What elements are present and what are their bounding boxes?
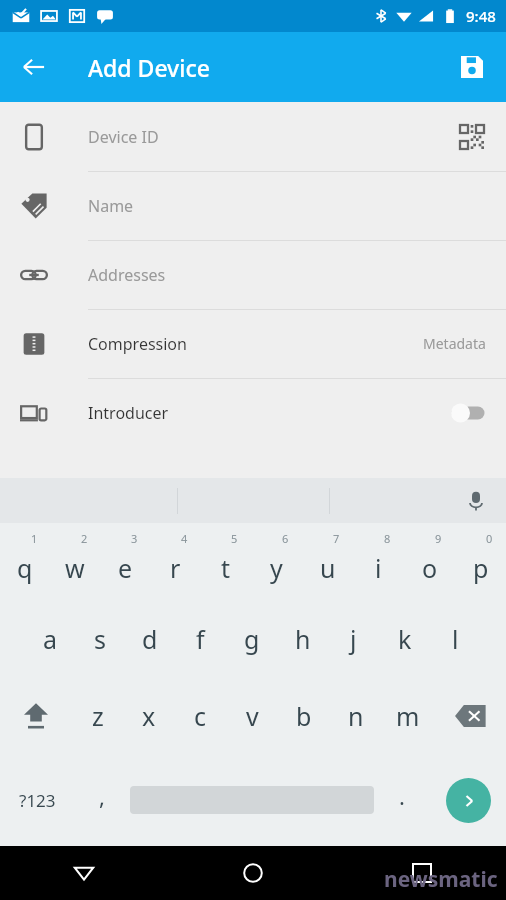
button[interactable]: 5 bbox=[200, 523, 251, 600]
button[interactable]: f bbox=[175, 600, 226, 677]
button[interactable]: Space bbox=[130, 754, 374, 846]
button[interactable]: Name bbox=[0, 171, 506, 240]
staticText: , bbox=[99, 781, 105, 811]
staticText: 5 bbox=[231, 531, 238, 546]
staticText: 1 bbox=[31, 531, 38, 546]
button[interactable]: Scan QR code bbox=[450, 115, 494, 159]
button[interactable]: Save bbox=[448, 43, 496, 91]
staticText: t bbox=[221, 551, 231, 585]
staticText: f bbox=[196, 622, 205, 656]
button[interactable]: d bbox=[125, 600, 175, 677]
button[interactable]: Hide keyboard bbox=[0, 846, 168, 900]
staticText: Metadata bbox=[423, 334, 486, 353]
staticText: s bbox=[94, 622, 106, 656]
button[interactable]: 1 bbox=[0, 523, 50, 600]
button[interactable]: a bbox=[25, 600, 75, 677]
staticText: Addresses bbox=[88, 264, 166, 286]
button[interactable] bbox=[442, 398, 494, 428]
button[interactable]: l bbox=[430, 600, 481, 677]
staticText: 9:48 bbox=[466, 6, 496, 26]
button[interactable]: Compression bbox=[0, 309, 506, 378]
button[interactable]: j bbox=[328, 600, 379, 677]
staticText: d bbox=[142, 622, 158, 656]
button[interactable]: v bbox=[226, 677, 278, 754]
staticText: y bbox=[270, 551, 283, 585]
staticText: 9 bbox=[435, 531, 442, 546]
button[interactable]: Voice input bbox=[456, 481, 496, 521]
staticText: 8 bbox=[384, 531, 391, 546]
staticText: ?123 bbox=[19, 789, 56, 812]
staticText: Introducer bbox=[88, 402, 169, 424]
button[interactable]: k bbox=[379, 600, 430, 677]
staticText: x bbox=[142, 699, 156, 733]
button[interactable]: Device ID bbox=[0, 102, 506, 171]
button[interactable]: 2 bbox=[50, 523, 100, 600]
staticText: z bbox=[92, 699, 104, 733]
staticText: . bbox=[399, 781, 405, 811]
button[interactable]: Addresses bbox=[0, 240, 506, 309]
button[interactable]: b bbox=[278, 677, 330, 754]
button[interactable]: s bbox=[75, 600, 125, 677]
staticText: o bbox=[422, 551, 438, 585]
staticText: 7 bbox=[333, 531, 340, 546]
staticText: 2 bbox=[81, 531, 88, 546]
staticText: q bbox=[17, 551, 33, 585]
button[interactable]: 8 bbox=[353, 523, 404, 600]
staticText: i bbox=[375, 551, 382, 585]
staticText: p bbox=[473, 551, 489, 585]
button[interactable]: Home bbox=[168, 846, 337, 900]
button[interactable]: 6 bbox=[251, 523, 302, 600]
button[interactable]: Enter bbox=[446, 778, 491, 823]
button[interactable]: Introducer bbox=[0, 378, 506, 447]
staticText: Device ID bbox=[88, 126, 159, 148]
staticText: c bbox=[194, 699, 207, 733]
button[interactable]: h bbox=[277, 600, 328, 677]
staticText: a bbox=[43, 622, 58, 656]
button[interactable]: n bbox=[330, 677, 382, 754]
button[interactable]: . bbox=[374, 754, 430, 846]
staticText: u bbox=[320, 551, 336, 585]
button[interactable]: , bbox=[74, 754, 130, 846]
staticText: r bbox=[170, 551, 181, 585]
staticText: h bbox=[295, 622, 311, 656]
staticText: newsmatic bbox=[384, 865, 498, 894]
button[interactable]: Shift bbox=[0, 677, 72, 754]
staticText: m bbox=[396, 699, 420, 733]
staticText: j bbox=[350, 622, 357, 656]
staticText: 6 bbox=[282, 531, 289, 546]
button[interactable]: 4 bbox=[150, 523, 200, 600]
button[interactable]: 7 bbox=[302, 523, 353, 600]
staticText: 4 bbox=[181, 531, 188, 546]
button[interactable]: z bbox=[72, 677, 123, 754]
button[interactable]: 0 bbox=[455, 523, 506, 600]
button[interactable]: 3 bbox=[100, 523, 150, 600]
staticText: l bbox=[452, 622, 459, 656]
button[interactable]: ?123 bbox=[0, 754, 74, 846]
button[interactable]: x bbox=[123, 677, 174, 754]
staticText: w bbox=[65, 551, 85, 585]
button[interactable]: Backspace bbox=[434, 677, 506, 754]
button[interactable]: Recent apps bbox=[337, 846, 506, 900]
staticText: k bbox=[398, 622, 412, 656]
staticText: b bbox=[296, 699, 312, 733]
staticText: n bbox=[348, 699, 364, 733]
staticText: Compression bbox=[88, 333, 187, 355]
staticText: e bbox=[118, 551, 133, 585]
button[interactable]: g bbox=[226, 600, 277, 677]
staticText: 0 bbox=[486, 531, 493, 546]
staticText: Name bbox=[88, 195, 134, 217]
button[interactable]: Back bbox=[8, 41, 60, 93]
staticText: Add Device bbox=[88, 52, 210, 83]
button[interactable]: c bbox=[174, 677, 226, 754]
staticText: g bbox=[244, 622, 260, 656]
staticText: 3 bbox=[131, 531, 138, 546]
button[interactable]: m bbox=[382, 677, 434, 754]
staticText: v bbox=[246, 699, 259, 733]
button[interactable]: 9 bbox=[404, 523, 455, 600]
